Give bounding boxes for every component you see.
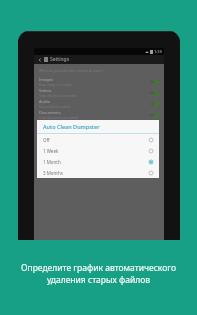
staticText: Keep images for a while	[39, 83, 73, 87]
button[interactable]: 3 Months	[37, 167, 159, 178]
button[interactable]: Images	[34, 76, 164, 87]
staticText: Keep other files	[39, 127, 62, 131]
staticText: What do you want the system to clean?	[39, 68, 104, 73]
staticText: Keep documents for a while	[39, 116, 79, 120]
staticText: 1 Week	[43, 148, 149, 154]
button[interactable]: Back	[37, 57, 43, 63]
staticText: Audio	[39, 99, 50, 104]
button[interactable]: Off	[37, 134, 159, 145]
staticText: Documents	[39, 110, 61, 115]
staticText: Keep audio for a while	[39, 105, 71, 109]
staticText: Settings	[50, 56, 70, 63]
button[interactable]: Other	[34, 120, 164, 131]
staticText: Auto Clean Dumpster	[43, 123, 100, 130]
staticText: 3 Months	[43, 170, 149, 176]
staticText: Определите график автоматического удален…	[21, 262, 176, 286]
button[interactable]: Documents	[34, 109, 164, 120]
staticText: Videos	[39, 88, 52, 93]
staticText: Keep the videos for a while	[39, 94, 77, 98]
button[interactable]: 1 Week	[37, 145, 159, 156]
button[interactable]: 1 Month	[37, 156, 159, 167]
staticText: 1:35	[154, 49, 162, 54]
staticText: 1 Month	[43, 159, 149, 165]
staticText: Off	[43, 137, 149, 143]
staticText: Images	[39, 77, 53, 82]
button[interactable]: Videos	[34, 87, 164, 98]
staticText: Other	[39, 121, 50, 126]
button[interactable]: Audio	[34, 98, 164, 109]
